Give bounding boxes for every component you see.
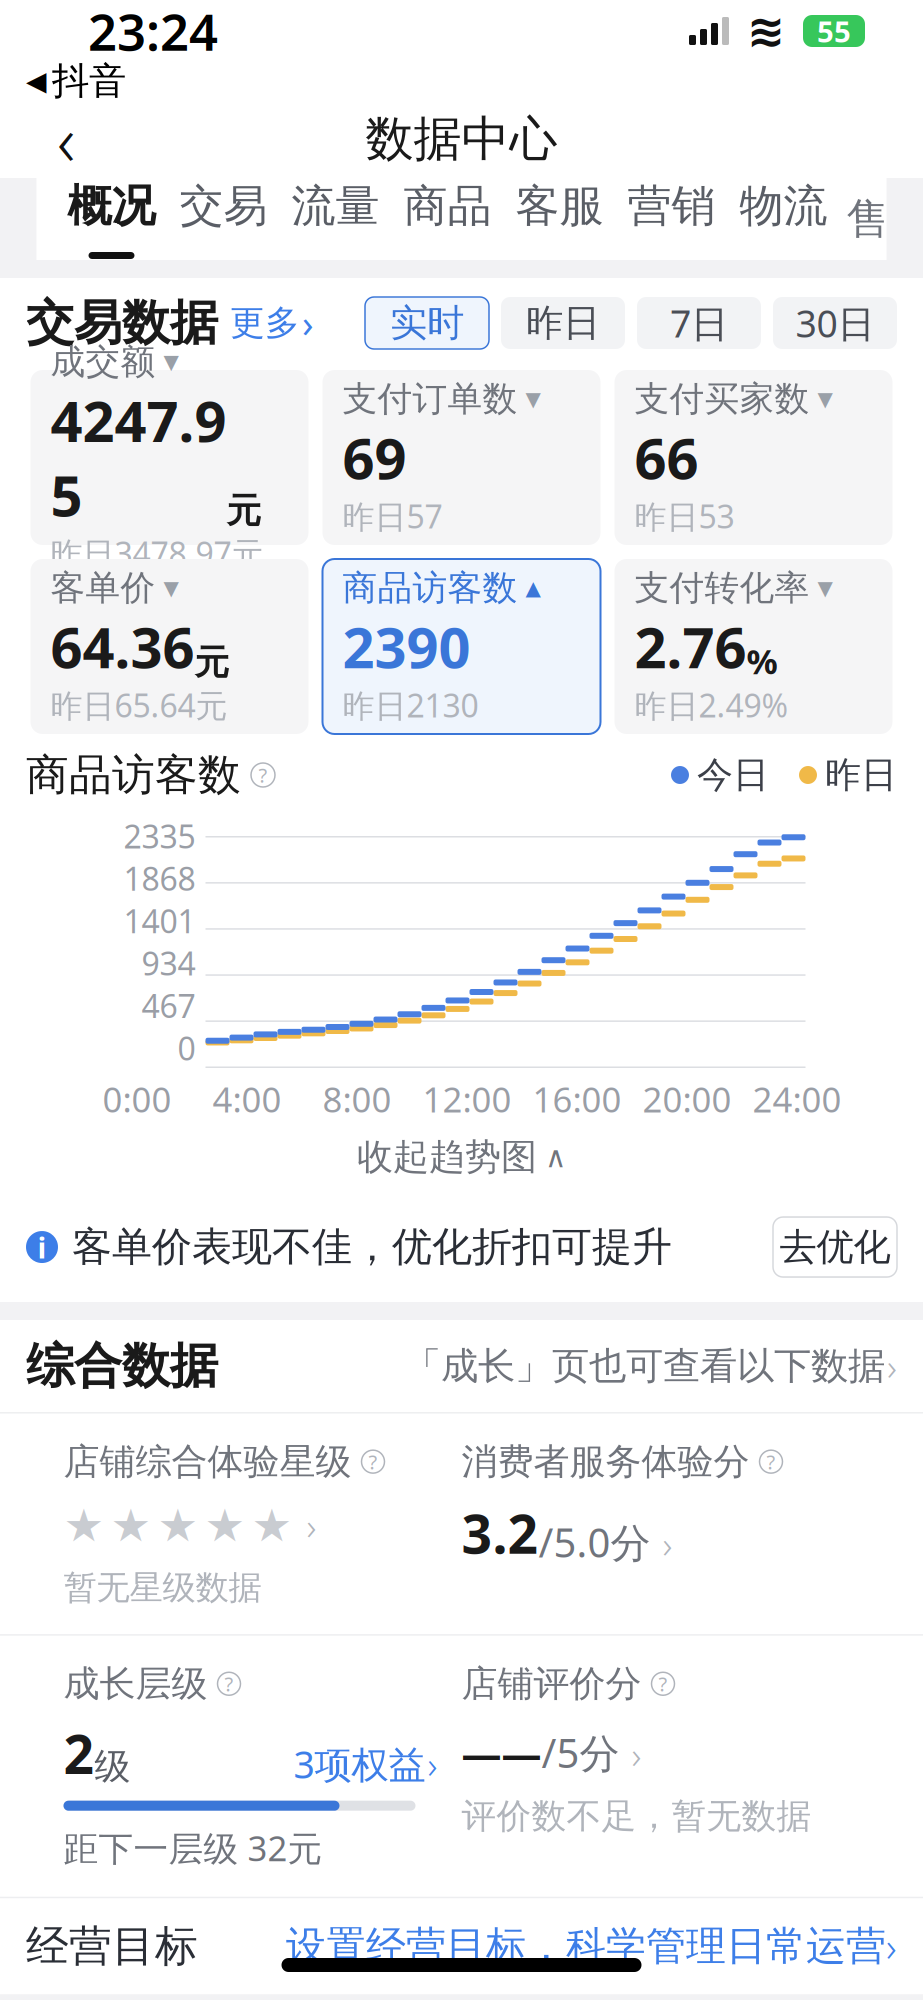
staticText: 467 <box>141 984 195 1027</box>
button[interactable]: 昨日 <box>501 297 625 349</box>
staticText: 64.36 <box>50 609 194 684</box>
staticText: › <box>886 1920 897 1973</box>
staticText: ? <box>658 1670 667 1697</box>
staticText: 售 <box>846 193 889 245</box>
staticText: 1401 <box>123 900 195 942</box>
staticText: 成长层级 <box>63 1662 207 1706</box>
button[interactable]: ◀ <box>0 58 126 104</box>
staticText: 营销 <box>627 179 715 233</box>
staticText: 30日 <box>795 298 874 348</box>
button[interactable]: 客服 <box>510 179 622 259</box>
button[interactable]: 支付订单数 <box>322 370 600 545</box>
button[interactable]: 概况 <box>62 179 174 259</box>
button[interactable]: 支付转化率 <box>614 559 892 734</box>
staticText: 实时 <box>390 300 464 346</box>
staticText: ? <box>766 1448 775 1475</box>
staticText: 20:00 <box>642 1076 731 1122</box>
staticText: 昨日2.49% <box>634 684 788 726</box>
button[interactable]: 营销 <box>622 179 734 259</box>
staticText: 69 <box>342 420 406 495</box>
staticText: › <box>662 1519 672 1569</box>
button[interactable]: 商品访客数 <box>322 559 600 734</box>
button[interactable]: 收起趋势图 <box>0 1122 923 1192</box>
staticText: 0 <box>177 1027 195 1069</box>
staticText: 客单价 <box>50 567 155 609</box>
button[interactable]: 去优化 <box>773 1217 897 1277</box>
staticText: ▼ <box>163 350 178 373</box>
button[interactable]: 7日 <box>637 297 761 349</box>
staticText: 2 <box>63 1718 94 1789</box>
staticText: › <box>427 1739 437 1789</box>
staticText: ∧ <box>545 1140 566 1174</box>
button[interactable]: ★ <box>63 1484 461 1551</box>
staticText: 元 <box>194 641 229 684</box>
staticText: 收起趋势图 <box>357 1135 537 1179</box>
staticText: ▼ <box>817 388 832 410</box>
staticText: 「成长」页也可查看以下数据 <box>404 1343 885 1389</box>
button[interactable]: —— <box>461 1706 859 1779</box>
button[interactable]: 物流 <box>734 179 846 259</box>
staticText: 支付转化率 <box>634 567 809 609</box>
button[interactable]: 返回 <box>26 102 106 176</box>
staticText: ★ <box>110 1500 151 1551</box>
staticText: 昨日 <box>526 300 600 346</box>
staticText: 经营目标 <box>26 1920 198 1972</box>
staticText: ? <box>368 1448 377 1475</box>
staticText: ▼ <box>163 577 178 599</box>
staticText: 更多 <box>230 302 300 344</box>
staticText: 消费者服务体验分 <box>461 1439 749 1484</box>
staticText: ★ <box>157 1500 198 1551</box>
button[interactable]: 客单价 <box>30 559 308 734</box>
button[interactable]: 3项权益 <box>293 1739 437 1789</box>
staticText: 昨日53 <box>634 495 734 537</box>
button[interactable]: 「成长」页也可查看以下数据 <box>404 1341 897 1391</box>
staticText: 级 <box>94 1744 130 1789</box>
staticText: ? <box>224 1670 233 1697</box>
staticText: 去优化 <box>779 1224 890 1270</box>
button[interactable]: 3.2 <box>461 1484 859 1569</box>
staticText: 店铺评价分 <box>461 1662 641 1706</box>
staticText: 1868 <box>123 857 195 900</box>
button[interactable]: 商品 <box>398 179 510 259</box>
staticText: 店铺综合体验星级 <box>63 1439 351 1484</box>
staticText: 昨日65.64元 <box>50 684 227 726</box>
staticText: 66 <box>634 420 698 495</box>
button[interactable]: 成交额 <box>30 370 308 545</box>
button[interactable]: 支付买家数 <box>614 370 892 545</box>
staticText: 今日 <box>697 753 769 797</box>
staticText: › <box>631 1729 641 1779</box>
button[interactable]: 交易 <box>174 179 286 259</box>
staticText: 物流 <box>739 179 827 233</box>
staticText: 昨日2130 <box>342 684 478 726</box>
staticText: 支付订单数 <box>342 378 517 420</box>
staticText: 商品 <box>403 179 491 233</box>
staticText: 昨日 <box>825 753 897 797</box>
staticText: 客单价表现不佳，优化折扣可提升 <box>72 1222 672 1272</box>
staticText: ▼ <box>525 388 540 410</box>
staticText: % <box>746 638 777 684</box>
staticText: 4:00 <box>212 1076 281 1122</box>
staticText: ▼ <box>817 577 832 599</box>
button[interactable]: 售 <box>846 179 886 259</box>
staticText: 2335 <box>123 815 195 857</box>
staticText: ◀ <box>26 66 47 96</box>
staticText: 流量 <box>291 179 379 233</box>
button[interactable]: 30日 <box>773 297 897 349</box>
staticText: 设置经营目标，科学管理日常运营 <box>286 1922 886 1971</box>
staticText: 3项权益 <box>293 1739 425 1789</box>
staticText: 4247.95 <box>50 383 226 532</box>
button[interactable]: 经营目标 <box>0 1898 923 1994</box>
staticText: 8:00 <box>322 1076 391 1122</box>
staticText: 交易数据 <box>26 293 218 352</box>
button[interactable]: 更多 <box>218 298 314 348</box>
staticText: ? <box>258 762 267 788</box>
staticText: 昨日57 <box>342 495 442 537</box>
staticText: 2390 <box>342 609 470 684</box>
staticText: ≋ <box>747 5 785 57</box>
staticText: i <box>37 1228 46 1267</box>
staticText: 3.2 <box>461 1498 538 1569</box>
button[interactable]: 流量 <box>286 179 398 259</box>
staticText: ★ <box>251 1500 292 1551</box>
button[interactable]: 实时 <box>365 297 489 349</box>
staticText: 支付买家数 <box>634 378 809 420</box>
